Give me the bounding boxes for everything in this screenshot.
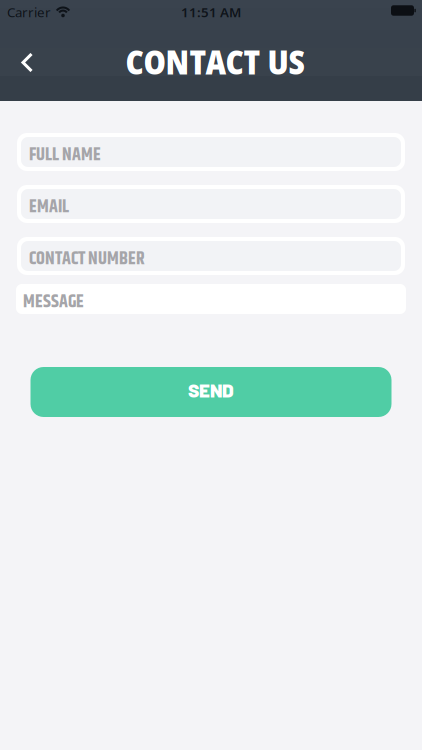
staticText: 11:51 AM	[181, 3, 241, 21]
staticText: MESSAGE	[23, 288, 84, 316]
button[interactable]: CONTACT NUMBER	[17, 237, 405, 275]
button[interactable]: EMAIL	[17, 185, 405, 223]
staticText: CONTACT NUMBER	[29, 245, 145, 273]
button[interactable]: MESSAGE	[16, 284, 406, 314]
button[interactable]: Back	[0, 42, 34, 82]
staticText: EMAIL	[29, 193, 69, 221]
staticText: SEND	[188, 379, 234, 401]
staticText: Carrier	[7, 3, 51, 21]
button[interactable]: SEND	[30, 367, 391, 417]
button[interactable]: FULL NAME	[17, 133, 405, 171]
staticText: FULL NAME	[29, 141, 101, 169]
staticText: CONTACT US	[125, 39, 304, 84]
